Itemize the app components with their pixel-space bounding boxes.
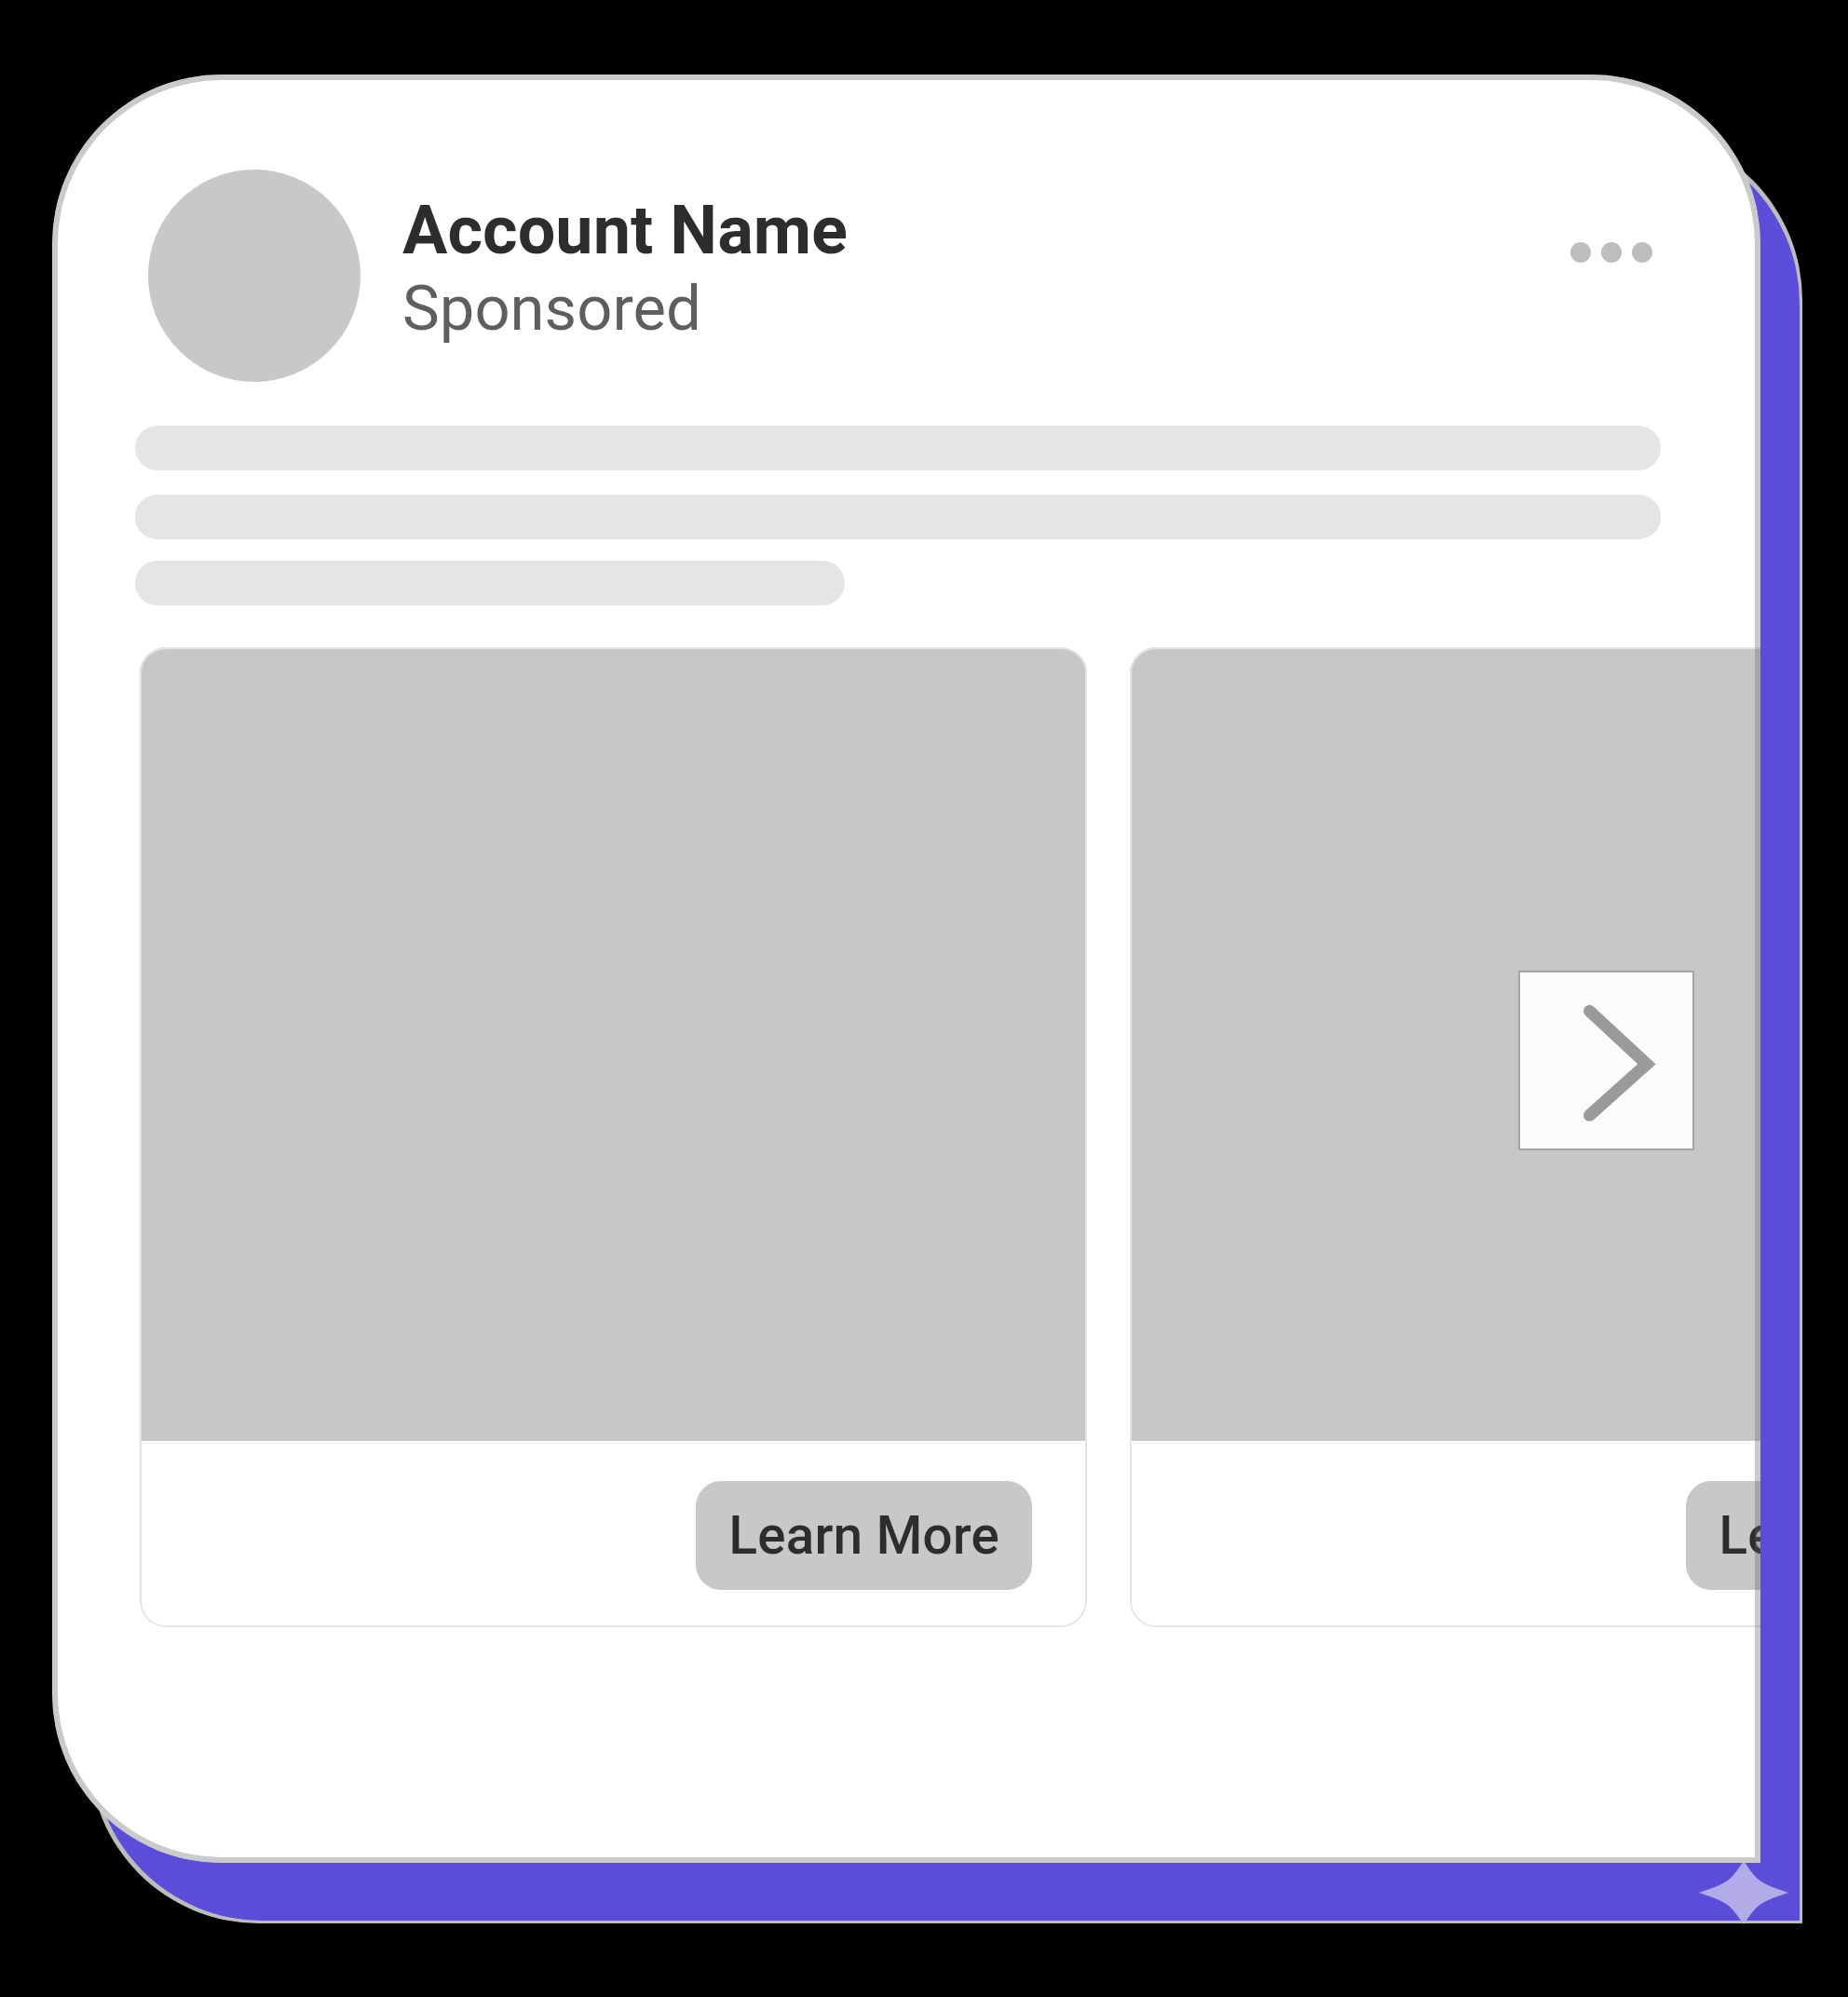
staticText: Account Name: [402, 191, 848, 269]
button[interactable]: Learn More: [1130, 647, 1760, 1627]
button[interactable]: Learn More: [696, 1481, 1032, 1590]
button[interactable]: Next: [1518, 971, 1694, 1150]
button[interactable]: Learn More: [140, 647, 1087, 1627]
button[interactable]: [141, 163, 876, 391]
button[interactable]: More options: [1546, 215, 1677, 290]
staticText: Sponsored: [402, 272, 701, 346]
staticText: Learn More: [728, 1504, 999, 1567]
button[interactable]: Learn More: [1686, 1481, 1760, 1590]
staticText: Learn More: [1719, 1504, 1760, 1567]
